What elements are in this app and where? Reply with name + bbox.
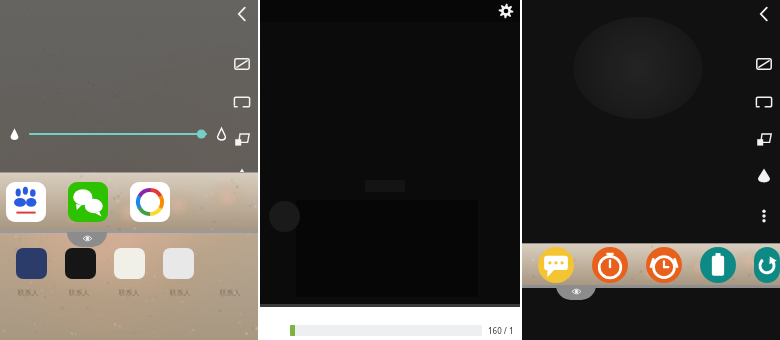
button[interactable]: Back [230,2,254,26]
button[interactable]: Sogou [130,182,170,222]
button[interactable]: Brightness slider [30,125,206,143]
button[interactable]: Baidu [6,182,46,222]
button[interactable]: Back [752,2,776,26]
staticText: 联系人 [158,288,202,297]
button[interactable]: Stopwatch [592,247,628,283]
button[interactable]: Multi window [752,128,776,152]
button[interactable]: Screenshot [752,52,776,76]
button[interactable]: App store [154,248,203,279]
button[interactable]: Alarm [646,247,682,283]
button[interactable]: WeChat [68,182,108,222]
button[interactable]: Brightness [230,164,254,188]
staticText: 160 / 1 [488,325,514,336]
button[interactable]: Messages [538,247,574,283]
button[interactable]: Toggle dock [556,285,596,300]
button[interactable]: Toggle dock [67,232,107,247]
button[interactable]: Battery [700,247,736,283]
button[interactable]: Refresh [754,247,780,283]
button[interactable]: Calendar [105,248,154,279]
button[interactable]: Multi window [230,128,254,152]
button[interactable]: Brightness [752,164,776,188]
staticText: 联系人 [208,288,252,297]
button[interactable]: More options [752,204,776,228]
button[interactable]: Settings [498,3,514,19]
button[interactable]: BlackBerry [56,248,105,279]
button[interactable]: Cast screen [230,90,254,114]
staticText: 联系人 [107,288,151,297]
button[interactable]: Contacts [6,248,56,279]
button[interactable]: Screenshot [230,52,254,76]
staticText: 联系人 [57,288,101,297]
staticText: 联系人 [6,288,50,297]
button[interactable]: Cast screen [752,90,776,114]
